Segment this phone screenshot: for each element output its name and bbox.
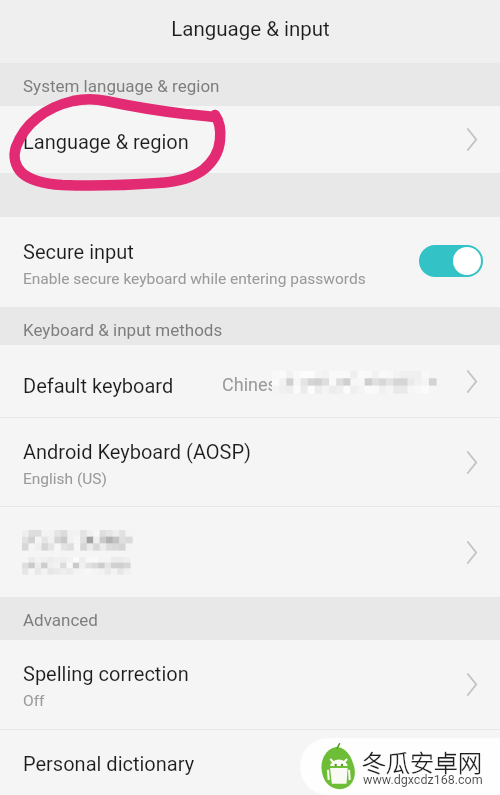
button[interactable]: Language & region — [0, 106, 500, 173]
staticText: Chines — [222, 374, 277, 395]
button[interactable]: Spelling correction — [0, 640, 500, 729]
staticText: English (US) — [23, 470, 107, 488]
staticText: Secure input — [23, 240, 134, 263]
button[interactable]: Secure input toggle — [419, 245, 483, 277]
staticText: Spelling correction — [23, 662, 189, 685]
staticText: www.dgxcdz168.com — [363, 772, 483, 787]
button[interactable] — [0, 507, 500, 597]
staticText: Keyboard & input methods — [23, 320, 223, 340]
button[interactable]: Personal dictionary — [0, 730, 500, 795]
staticText: Off — [23, 692, 45, 710]
staticText: Android Keyboard (AOSP) — [23, 440, 252, 463]
button[interactable]: Default keyboard — [0, 345, 500, 417]
staticText: Enable secure keyboard while entering pa… — [23, 270, 366, 288]
staticText: Language & region — [23, 130, 189, 153]
staticText: Advanced — [23, 610, 98, 630]
staticText: Personal dictionary — [23, 752, 195, 775]
staticText: Language & input — [171, 17, 330, 41]
staticText: 冬瓜安卓网 — [362, 744, 482, 779]
button[interactable]: Secure input — [0, 217, 500, 307]
staticText: System language & region — [23, 76, 220, 96]
staticText: Default keyboard — [23, 374, 174, 397]
button[interactable]: Android Keyboard (AOSP) — [0, 418, 500, 506]
